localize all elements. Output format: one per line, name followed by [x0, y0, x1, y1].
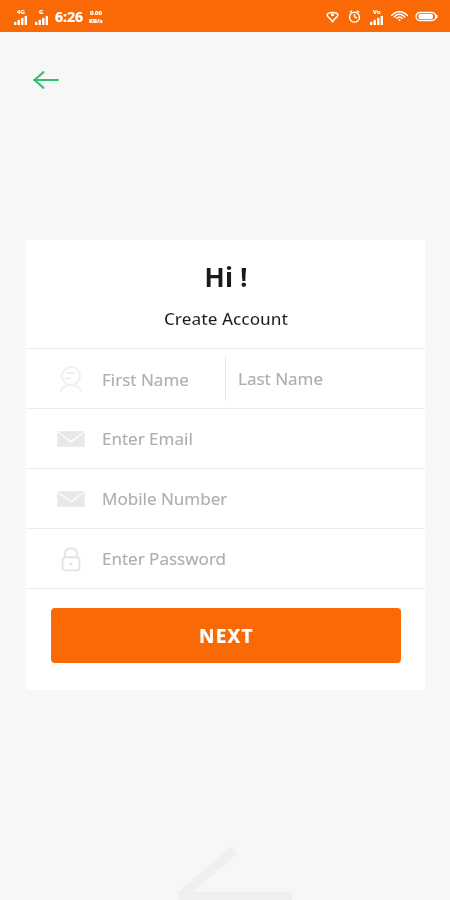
button[interactable]: Mobile Number	[26, 469, 425, 528]
staticText: G	[39, 8, 44, 16]
staticText: Enter Password	[102, 547, 227, 570]
staticText: Last Name	[238, 367, 324, 390]
button[interactable]: NEXT	[51, 608, 401, 663]
staticText: Create Account	[164, 307, 288, 330]
button[interactable]: First Name	[26, 349, 225, 408]
button[interactable]: Enter Password	[26, 529, 425, 588]
button[interactable]: Back	[24, 58, 68, 102]
staticText: Enter Email	[102, 427, 193, 450]
staticText: Hi !	[204, 258, 248, 295]
staticText: 0.00	[90, 9, 102, 17]
staticText: NEXT	[199, 623, 254, 649]
staticText: 6:26	[55, 7, 83, 26]
staticText: First Name	[102, 368, 189, 391]
button[interactable]: Enter Email	[26, 409, 425, 468]
staticText: 4G	[17, 8, 25, 16]
button[interactable]: Last Name	[226, 349, 425, 408]
staticText: Vo	[373, 8, 381, 16]
staticText: Mobile Number	[102, 487, 228, 510]
staticText: KB/s	[89, 17, 103, 25]
